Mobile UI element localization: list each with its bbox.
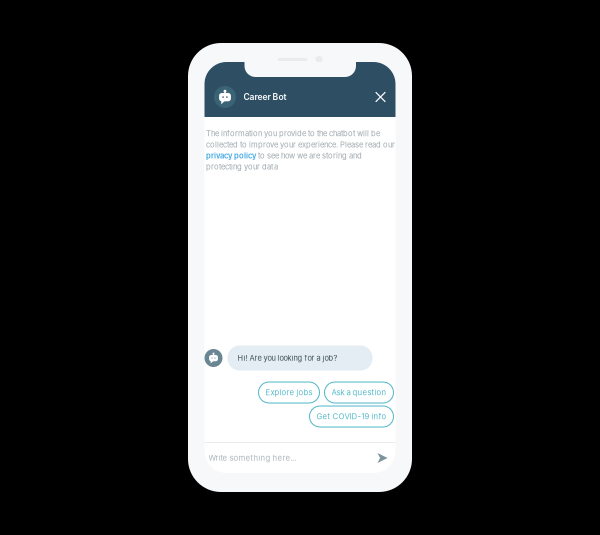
button[interactable]: Send [374,450,390,466]
button[interactable]: Get COVID-19 info [309,406,393,427]
staticText: Career Bot [243,92,286,102]
staticText: The information you provide to the chatb… [206,129,380,138]
staticText: privacy policy [206,151,256,160]
staticText: Ask a question [331,388,386,397]
staticText: collected to improve your experience. Pl… [206,140,395,149]
staticText: Write something here... [208,453,296,463]
staticText: Get COVID-19 info [316,412,386,421]
button[interactable]: Ask a question [324,382,393,403]
button[interactable]: Explore jobs [258,382,319,403]
button[interactable]: Close [370,87,390,107]
staticText: to see how we are storing and [256,151,362,160]
staticText: Explore jobs [265,388,312,397]
staticText: protecting your data [206,162,278,171]
staticText: Hi! Are you looking for a job? [237,353,337,362]
